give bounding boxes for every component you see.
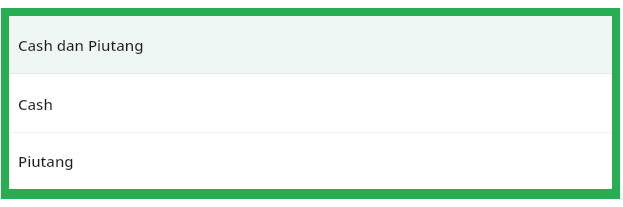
button[interactable]: Cash bbox=[9, 74, 612, 133]
staticText: Cash dan Piutang bbox=[18, 35, 144, 55]
button[interactable]: Cash dan Piutang bbox=[9, 16, 612, 74]
staticText: Piutang bbox=[18, 151, 74, 171]
button[interactable]: Piutang bbox=[9, 133, 612, 189]
staticText: Cash bbox=[18, 94, 53, 114]
